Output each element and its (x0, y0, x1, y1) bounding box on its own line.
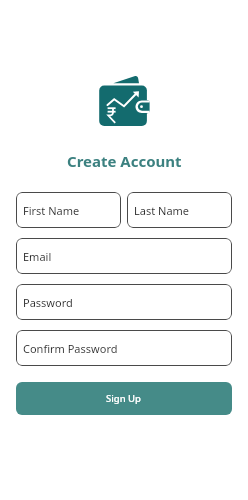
button[interactable]: Sign Up (16, 382, 232, 415)
staticText: Last Name (134, 203, 190, 218)
staticText: Email (23, 249, 52, 264)
button[interactable]: Password (16, 284, 232, 320)
staticText: Sign Up (106, 392, 142, 405)
staticText: Password (23, 295, 73, 310)
staticText: Create Account (67, 151, 182, 171)
button[interactable]: Confirm Password (16, 330, 232, 366)
staticText: Confirm Password (23, 341, 118, 356)
staticText: First Name (23, 203, 80, 218)
button[interactable]: Email (16, 238, 232, 274)
button[interactable]: Last Name (127, 192, 232, 228)
button[interactable]: First Name (16, 192, 121, 228)
